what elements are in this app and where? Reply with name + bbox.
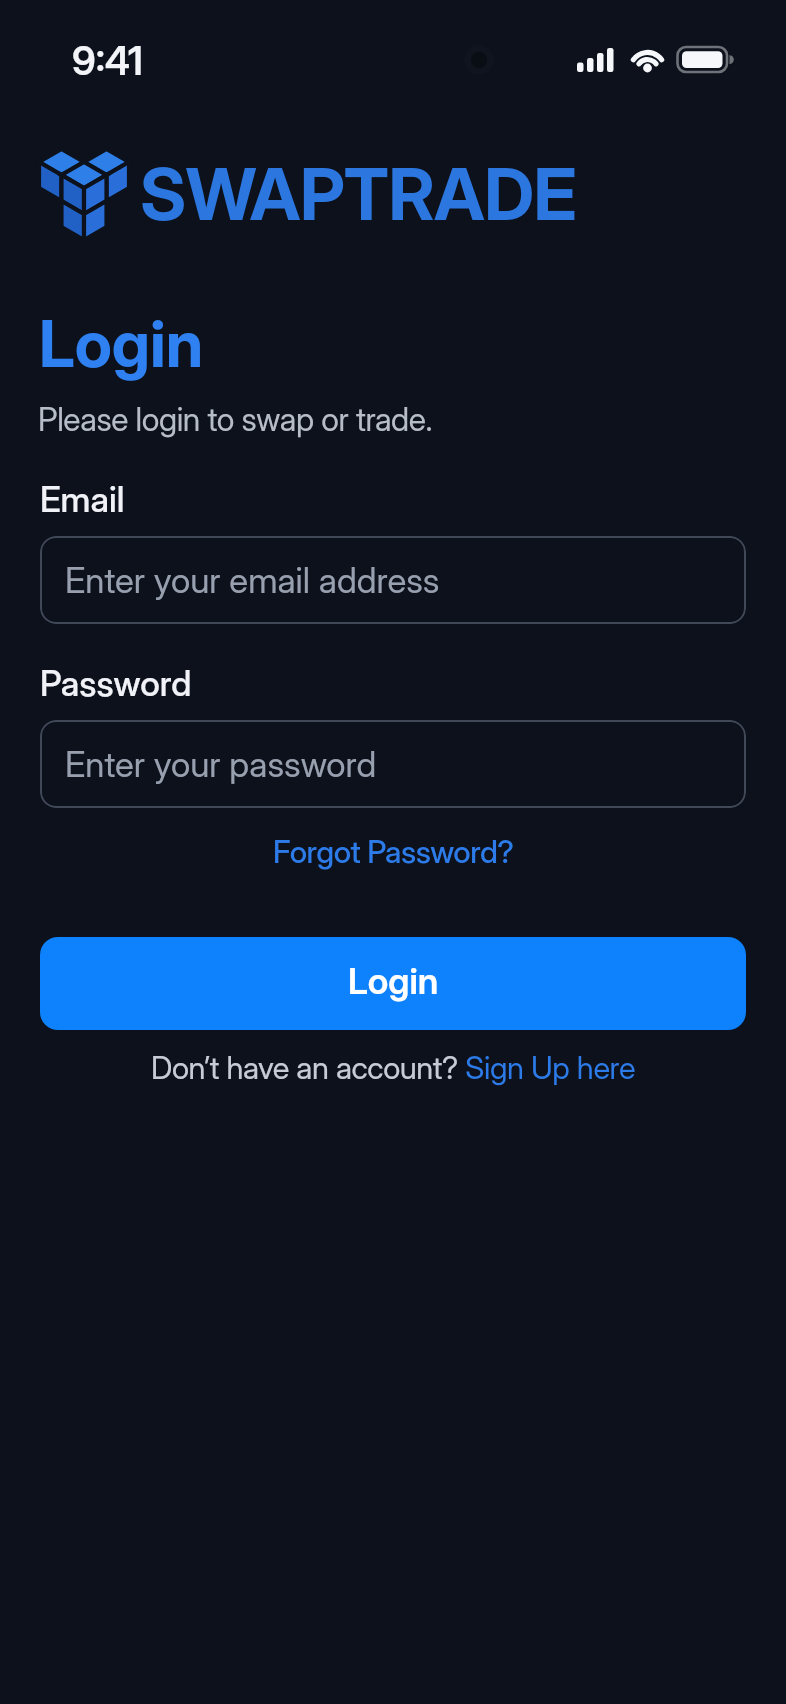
staticText: Password [40, 662, 192, 704]
staticText: SWAPTRADE [140, 151, 577, 237]
staticText: Enter your password [65, 743, 377, 785]
button[interactable]: Don’t have an account? Sign Up here [151, 1049, 636, 1087]
staticText: Forgot Password? [273, 833, 514, 871]
button[interactable]: Enter your password [40, 720, 746, 808]
staticText: Email [40, 478, 125, 520]
staticText: Don’t have an account? Sign Up here [151, 1049, 636, 1087]
staticText: 9:41 [72, 37, 143, 84]
staticText: Enter your email address [65, 559, 440, 601]
staticText: Please login to swap or trade. [38, 400, 433, 439]
button[interactable]: Forgot Password? [273, 833, 514, 871]
button[interactable]: Login [40, 937, 746, 1030]
button[interactable]: Enter your email address [40, 536, 746, 624]
staticText: Login [39, 305, 204, 382]
staticText: Login [348, 959, 439, 1003]
